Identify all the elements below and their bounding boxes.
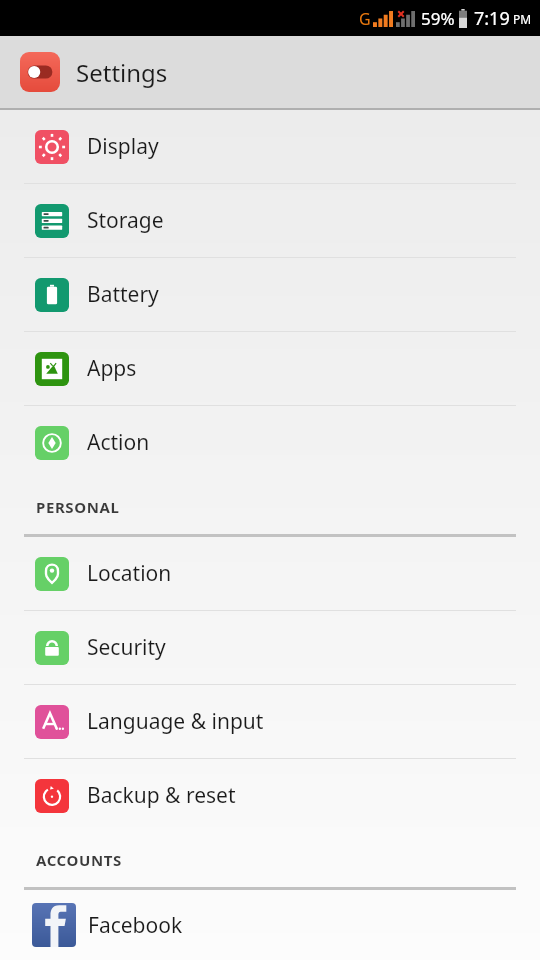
staticText: Settings <box>76 56 168 89</box>
staticText: Battery <box>87 280 159 309</box>
button[interactable]: Security <box>0 611 540 684</box>
button[interactable]: Location <box>0 537 540 610</box>
staticText: Display <box>87 132 159 161</box>
button[interactable]: Facebook <box>0 890 540 960</box>
button[interactable]: Settings <box>0 36 540 108</box>
staticText: 59% <box>421 7 455 30</box>
button[interactable]: Battery <box>0 258 540 331</box>
staticText: Facebook <box>88 911 183 940</box>
staticText: PM <box>513 11 532 27</box>
staticText: PERSONAL <box>36 497 120 517</box>
button[interactable]: Language & input <box>0 685 540 758</box>
staticText: Apps <box>87 354 137 383</box>
button[interactable]: Action <box>0 406 540 479</box>
staticText: Action <box>87 428 150 457</box>
staticText: 7:19 <box>474 6 510 31</box>
staticText: Language & input <box>87 707 264 736</box>
staticText: Security <box>87 633 166 662</box>
staticText: Backup & reset <box>87 781 236 810</box>
staticText: Location <box>87 559 172 588</box>
staticText: G <box>359 8 371 30</box>
staticText: ACCOUNTS <box>36 850 122 870</box>
button[interactable]: Backup & reset <box>0 759 540 832</box>
button[interactable]: Display <box>0 110 540 183</box>
button[interactable]: Apps <box>0 332 540 405</box>
button[interactable]: Storage <box>0 184 540 257</box>
staticText: Storage <box>87 206 164 235</box>
